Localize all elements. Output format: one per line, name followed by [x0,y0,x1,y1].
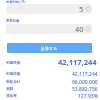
button[interactable]: Clear [85,6,91,12]
staticText: 96,000,000 [72,79,98,86]
button[interactable]: 増加率 [6,93,98,100]
staticText: 計算する [41,46,58,51]
button[interactable]: 差額 [6,86,98,93]
button[interactable]: 計算する [7,43,92,53]
staticText: 初期投資 [6,61,21,66]
button[interactable]: Clear [85,26,91,32]
staticText: 初期投資 [6,72,21,77]
staticText: 5 [79,4,84,14]
staticText: 投資利回り% [6,0,25,4]
button[interactable]: 40 [6,24,92,34]
button[interactable]: 5 [6,4,92,14]
staticText: 42,117,244 [72,71,98,78]
staticText: 受取合計 [6,80,21,85]
button[interactable]: 受取合計 [6,79,98,86]
staticText: 42,117,244 [58,57,97,67]
button[interactable]: 初期投資 [6,71,98,78]
staticText: 増加率 [6,94,17,99]
staticText: 127.93% [78,93,98,100]
staticText: 受取年数 [6,19,20,23]
staticText: 40 [75,24,84,34]
staticText: 53,882,756 [72,86,98,93]
staticText: 差額 [6,87,14,92]
